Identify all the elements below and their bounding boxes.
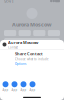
staticText: Share Contact [15, 51, 43, 56]
staticText: App [11, 88, 17, 92]
staticText: Aurora Moscow [12, 21, 52, 28]
staticText: Options [15, 62, 26, 66]
staticText: App [29, 88, 35, 92]
staticText: 9:41 [4, 0, 14, 4]
staticText: App [20, 88, 26, 92]
staticText: Choose what to include [15, 57, 49, 61]
staticText: Contact [8, 46, 18, 49]
staticText: App [2, 88, 8, 92]
staticText: Aurora Moscow [8, 40, 38, 45]
